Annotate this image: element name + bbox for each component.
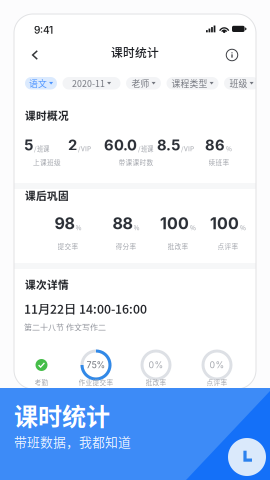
staticText: 课次详情 xyxy=(25,276,69,292)
staticText: 75% xyxy=(86,360,105,370)
staticText: 8.5 xyxy=(157,136,180,154)
staticText: 60.0 xyxy=(104,136,137,154)
staticText: 9:41 xyxy=(34,24,53,36)
staticText: 作业提交率 xyxy=(78,377,113,387)
staticText: % xyxy=(240,223,246,232)
staticText: 点评率 xyxy=(217,241,238,251)
staticText: 续班率 xyxy=(208,157,229,167)
staticText: % xyxy=(75,223,81,232)
button[interactable]: 说明 xyxy=(222,45,242,65)
button[interactable]: 老师 xyxy=(126,77,161,89)
staticText: 班级 xyxy=(229,77,247,90)
staticText: 2 xyxy=(68,136,77,154)
staticText: 课时统计 xyxy=(14,398,110,432)
button[interactable]: 返回 xyxy=(24,44,46,66)
staticText: 0% xyxy=(209,360,224,370)
staticText: 第二十八节 作文写作二 xyxy=(24,321,106,333)
staticText: /班课 xyxy=(138,144,153,153)
staticText: 上课班级 xyxy=(33,157,61,167)
staticText: 5 xyxy=(24,136,33,154)
staticText: % xyxy=(133,223,139,232)
staticText: 2020-11 xyxy=(72,77,105,90)
staticText: 带班数据，我都知道 xyxy=(14,432,131,451)
staticText: 语文 xyxy=(29,77,47,90)
staticText: 课后巩固 xyxy=(25,187,69,203)
staticText: 老师 xyxy=(131,77,149,90)
staticText: /VIP xyxy=(78,144,91,153)
staticText: 批改率 xyxy=(145,377,166,387)
staticText: 100 xyxy=(210,214,239,233)
staticText: 88 xyxy=(112,214,132,233)
staticText: 0% xyxy=(148,360,163,370)
staticText: % xyxy=(190,223,196,232)
staticText: 得分率 xyxy=(115,241,136,251)
button[interactable]: 语文 xyxy=(25,77,57,89)
staticText: 课程类型 xyxy=(171,77,207,90)
staticText: 批改率 xyxy=(167,241,188,251)
staticText: % xyxy=(226,144,232,153)
staticText: 课时统计 xyxy=(111,43,159,60)
staticText: 86 xyxy=(205,136,225,154)
staticText: 98 xyxy=(54,214,74,233)
staticText: 11月22日 14:00-16:00 xyxy=(24,300,147,317)
staticText: /班课 xyxy=(34,144,49,153)
staticText: 课时概况 xyxy=(25,107,69,123)
button[interactable]: 班级 xyxy=(224,77,259,89)
staticText: 提交率 xyxy=(57,241,78,251)
button[interactable]: 课程类型 xyxy=(166,77,218,89)
staticText: /VIP xyxy=(181,144,194,153)
staticText: 100 xyxy=(160,214,189,233)
staticText: 带课课时数 xyxy=(118,157,153,167)
staticText: 考勤 xyxy=(34,377,48,387)
button[interactable]: 2020-11 xyxy=(62,77,120,89)
staticText: 点评率 xyxy=(206,377,227,387)
